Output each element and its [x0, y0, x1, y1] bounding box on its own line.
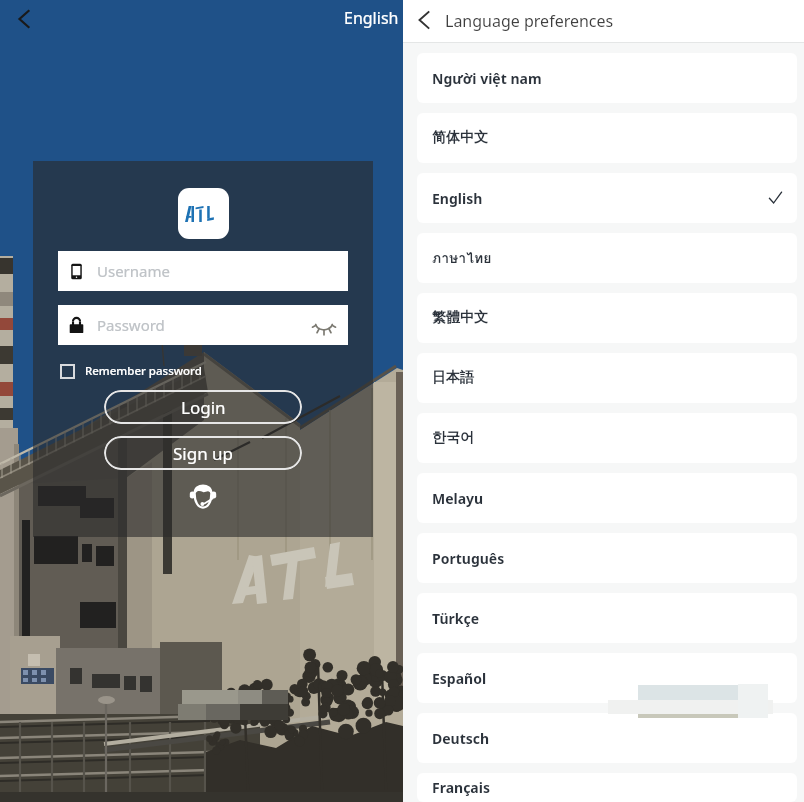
- staticText: Sign up: [173, 442, 234, 465]
- staticText: Français: [432, 778, 490, 797]
- staticText: Username: [97, 261, 170, 281]
- staticText: 简体中文: [432, 129, 488, 147]
- button[interactable]: 简体中文: [417, 113, 797, 163]
- staticText: ภาษาไทย: [432, 247, 492, 269]
- staticText: Login: [181, 396, 226, 419]
- button[interactable]: 日本語: [417, 353, 797, 403]
- button[interactable]: ภาษาไทย: [417, 233, 797, 283]
- button[interactable]: Password: [58, 305, 348, 345]
- staticText: Türkçe: [432, 609, 479, 628]
- staticText: 한국어: [432, 429, 474, 447]
- button[interactable]: Show password: [312, 313, 336, 337]
- staticText: Password: [97, 315, 165, 335]
- button[interactable]: Login: [104, 390, 302, 424]
- button[interactable]: English: [417, 173, 797, 223]
- button[interactable]: Português: [417, 533, 797, 583]
- button[interactable]: Back: [403, 0, 445, 42]
- staticText: Language preferences: [445, 10, 614, 32]
- button[interactable]: Español: [417, 653, 797, 703]
- staticText: Español: [432, 669, 487, 688]
- staticText: Người việt nam: [432, 69, 542, 88]
- staticText: Deutsch: [432, 729, 490, 748]
- button[interactable]: Người việt nam: [417, 53, 797, 103]
- button[interactable]: Username: [58, 251, 348, 291]
- button[interactable]: 繁體中文: [417, 293, 797, 343]
- button[interactable]: Back: [2, 0, 46, 44]
- button[interactable]: Remember password: [58, 361, 204, 381]
- staticText: Melayu: [432, 489, 484, 508]
- button[interactable]: Customer service: [188, 480, 218, 510]
- button[interactable]: Sign up: [104, 436, 302, 470]
- button[interactable]: English: [340, 5, 403, 31]
- staticText: English: [344, 7, 399, 29]
- staticText: 繁體中文: [432, 309, 488, 327]
- staticText: 日本語: [432, 369, 474, 387]
- staticText: Português: [432, 549, 505, 568]
- button[interactable]: Melayu: [417, 473, 797, 523]
- staticText: English: [432, 189, 483, 208]
- button[interactable]: Français: [417, 773, 797, 802]
- button[interactable]: Türkçe: [417, 593, 797, 643]
- button[interactable]: 한국어: [417, 413, 797, 463]
- button[interactable]: Deutsch: [417, 713, 797, 763]
- staticText: Remember password: [85, 363, 202, 379]
